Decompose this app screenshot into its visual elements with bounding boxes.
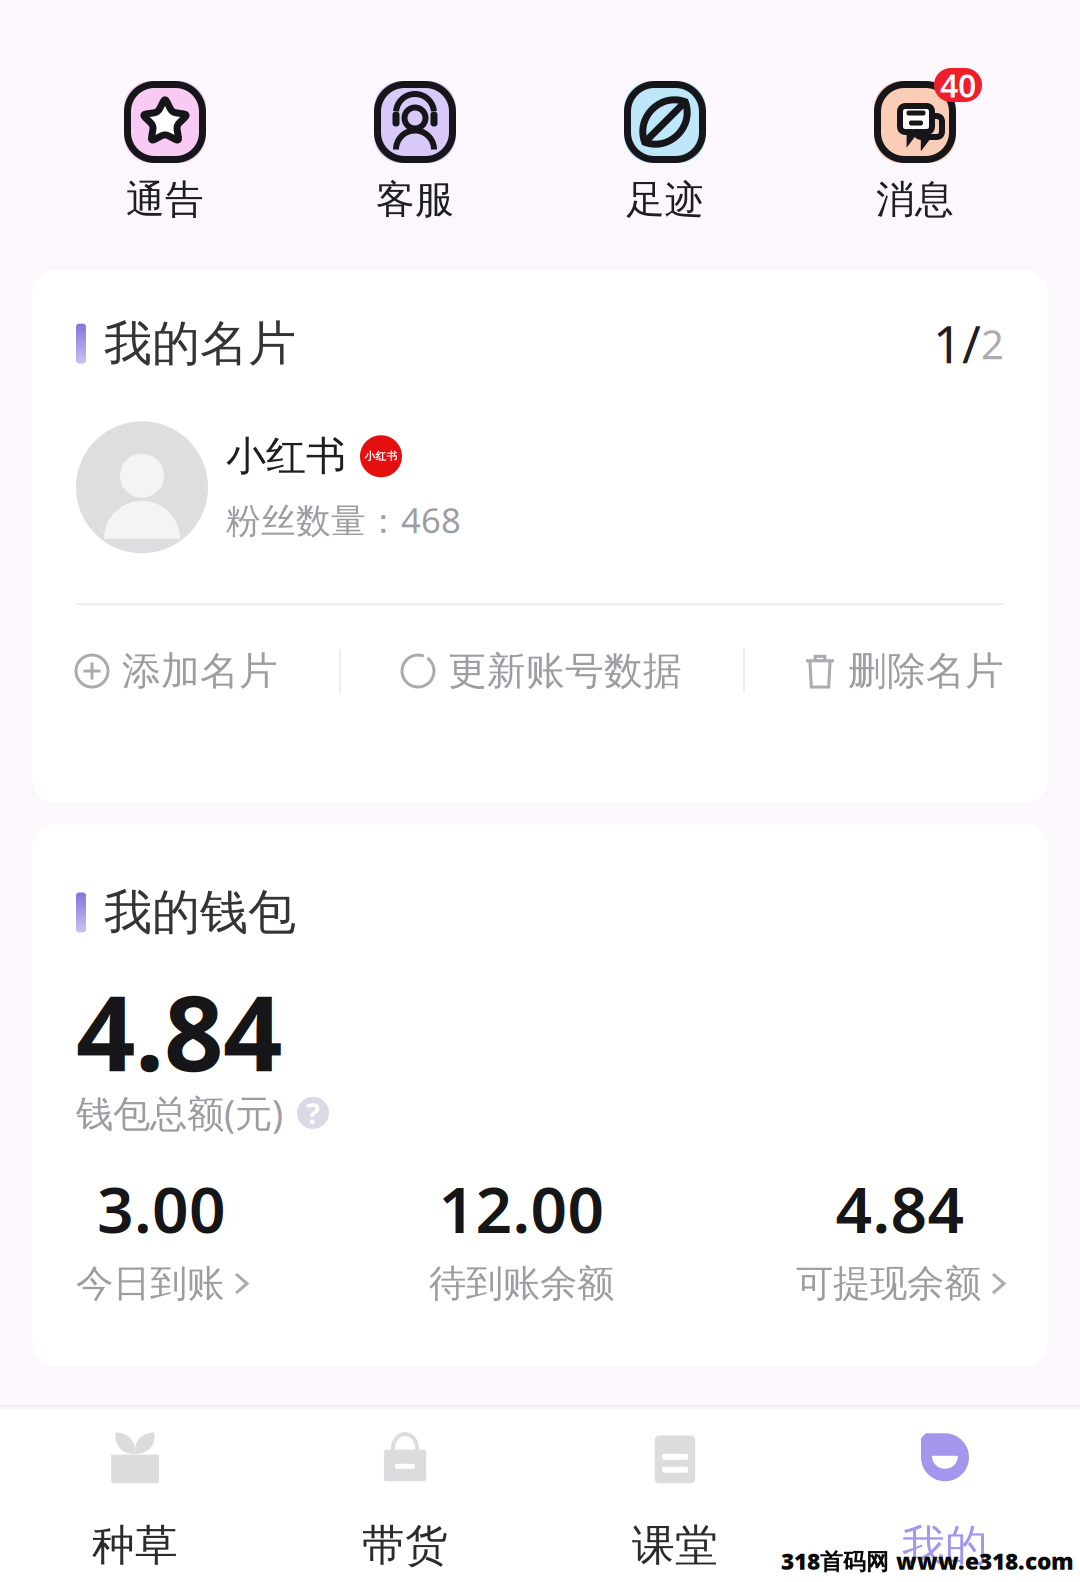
- staticText: 消息: [876, 176, 954, 223]
- staticText: 4.84: [835, 1166, 964, 1251]
- staticText: 添加名片: [122, 647, 278, 695]
- staticText: 删除名片: [848, 647, 1004, 695]
- staticText: 课堂: [632, 1519, 718, 1572]
- staticText: 粉丝数量：468: [226, 497, 461, 543]
- button[interactable]: 足迹: [540, 74, 790, 223]
- staticText: 2: [981, 317, 1004, 370]
- button[interactable]: 客服: [290, 74, 540, 223]
- button[interactable]: 40: [790, 74, 1040, 223]
- button[interactable]: 4.84: [796, 1166, 1004, 1306]
- staticText: 3.00: [97, 1166, 226, 1251]
- staticText: 小红书: [226, 432, 346, 481]
- staticText: 待到账余额: [429, 1261, 614, 1306]
- staticText: 带货: [362, 1519, 448, 1572]
- button[interactable]: 3.00: [76, 1166, 247, 1306]
- staticText: 钱包总额(元): [76, 1088, 283, 1138]
- staticText: 我的名片: [104, 314, 296, 373]
- staticText: 更新账号数据: [448, 647, 682, 695]
- button[interactable]: 删除名片: [806, 647, 1004, 695]
- staticText: 12.00: [438, 1166, 604, 1251]
- staticText: 318首码网 www.e318.com: [781, 1546, 1074, 1576]
- staticText: 我的: [902, 1519, 988, 1572]
- staticText: 客服: [376, 176, 454, 223]
- staticText: 4.84: [76, 962, 282, 1100]
- staticText: 足迹: [626, 176, 704, 223]
- button[interactable]: 课堂: [540, 1429, 810, 1572]
- button[interactable]: 通告: [40, 74, 290, 223]
- button[interactable]: 种草: [0, 1429, 270, 1572]
- staticText: ?: [306, 1093, 320, 1132]
- button[interactable]: 我的: [810, 1429, 1080, 1572]
- staticText: 我的钱包: [104, 883, 296, 942]
- staticText: 今日到账: [76, 1261, 224, 1306]
- staticText: 通告: [126, 176, 204, 223]
- staticText: 1/: [933, 310, 981, 377]
- staticText: 可提现余额: [796, 1261, 981, 1306]
- button[interactable]: 更新账号数据: [402, 647, 682, 695]
- button[interactable]: 12.00: [429, 1166, 614, 1306]
- staticText: 小红书: [364, 450, 397, 463]
- button[interactable]: 带货: [270, 1429, 540, 1572]
- button[interactable]: 添加名片: [76, 647, 278, 695]
- staticText: 种草: [92, 1519, 178, 1572]
- staticText: 40: [940, 64, 976, 106]
